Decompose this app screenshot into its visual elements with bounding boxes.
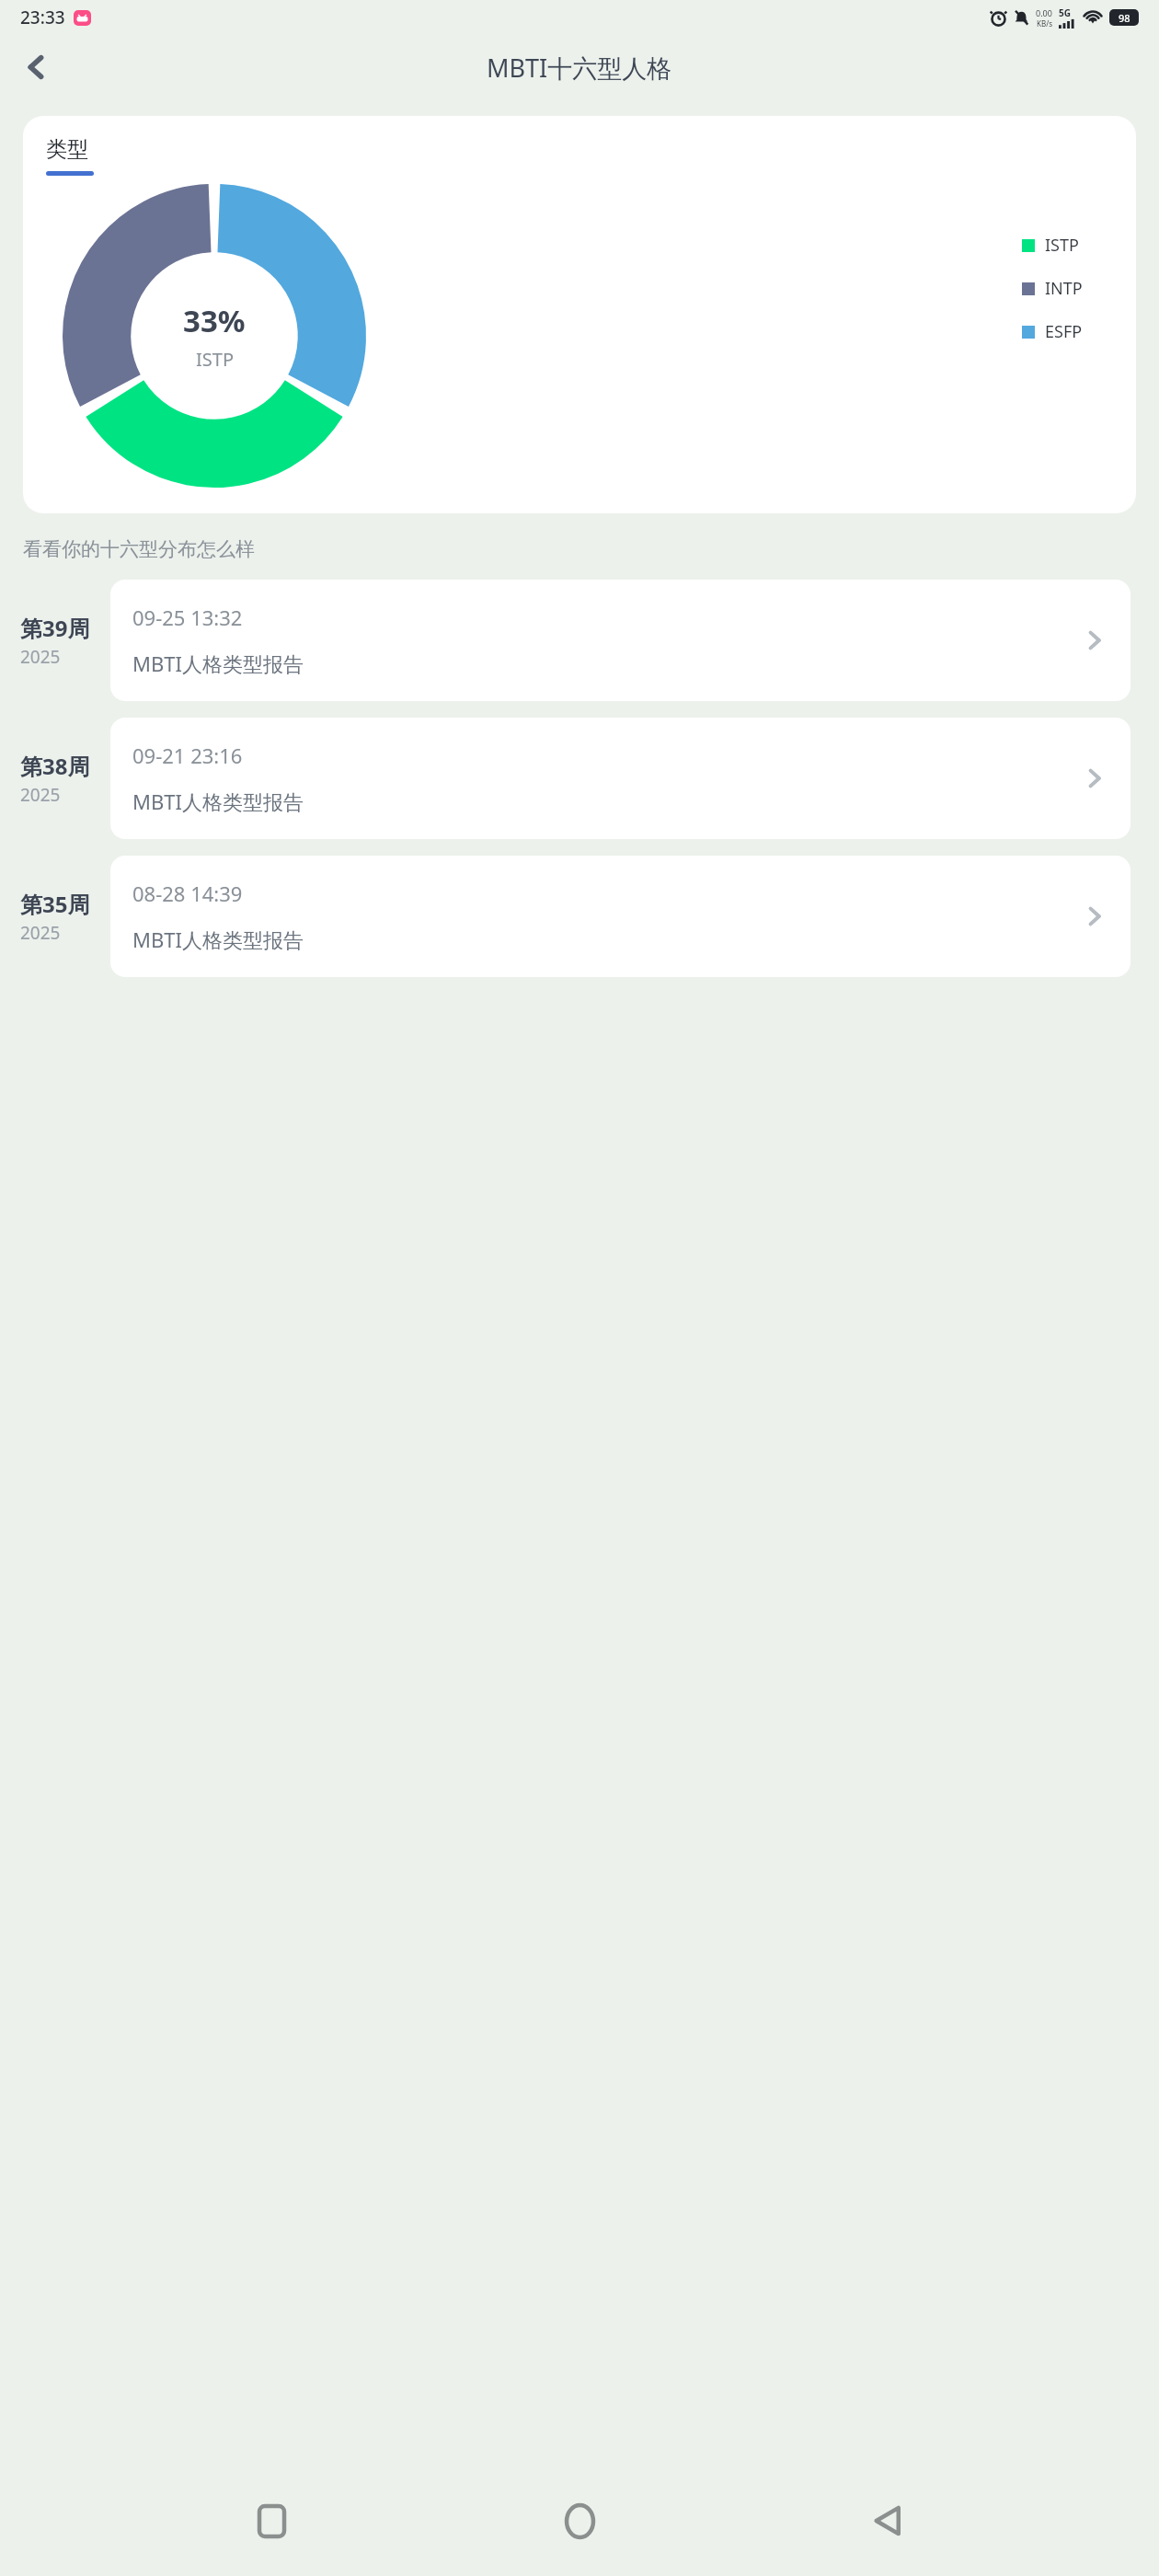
staticText: KB/s — [1037, 18, 1052, 29]
staticText: ESFP — [1045, 320, 1083, 343]
button[interactable]: Back — [851, 2484, 924, 2558]
staticText: 类型 — [46, 136, 88, 163]
staticText: 08-28 14:39 — [132, 880, 243, 907]
staticText: ISTP — [196, 347, 234, 372]
staticText: MBTI人格类型报告 — [132, 788, 304, 815]
staticText: INTP — [1045, 277, 1083, 300]
staticText: 23:33 — [20, 6, 65, 29]
staticText: MBTI人格类型报告 — [132, 926, 304, 953]
staticText: 第38周 — [20, 751, 90, 781]
staticText: 09-21 23:16 — [132, 742, 243, 769]
button[interactable]: 08-28 14:39 — [110, 856, 1130, 977]
staticText: 2025 — [20, 645, 61, 669]
staticText: MBTI十六型人格 — [487, 51, 672, 85]
staticText: 2025 — [20, 783, 61, 807]
button[interactable]: Home — [543, 2484, 616, 2558]
button[interactable]: Back — [11, 41, 63, 93]
button[interactable]: 09-21 23:16 — [110, 718, 1130, 839]
staticText: 33% — [183, 300, 246, 341]
staticText: 2025 — [20, 921, 61, 945]
button[interactable]: 09-25 13:32 — [110, 580, 1130, 701]
staticText: 09-25 13:32 — [132, 604, 243, 631]
staticText: 0.00 — [1036, 7, 1052, 18]
staticText: 看看你的十六型分布怎么样 — [23, 537, 255, 561]
staticText: ISTP — [1045, 234, 1079, 257]
staticText: MBTI人格类型报告 — [132, 650, 304, 677]
button[interactable]: Recents — [235, 2484, 308, 2558]
staticText: 5G — [1059, 6, 1071, 19]
staticText: 第39周 — [20, 613, 90, 643]
staticText: 98 — [1119, 11, 1130, 25]
staticText: 第35周 — [20, 889, 90, 919]
